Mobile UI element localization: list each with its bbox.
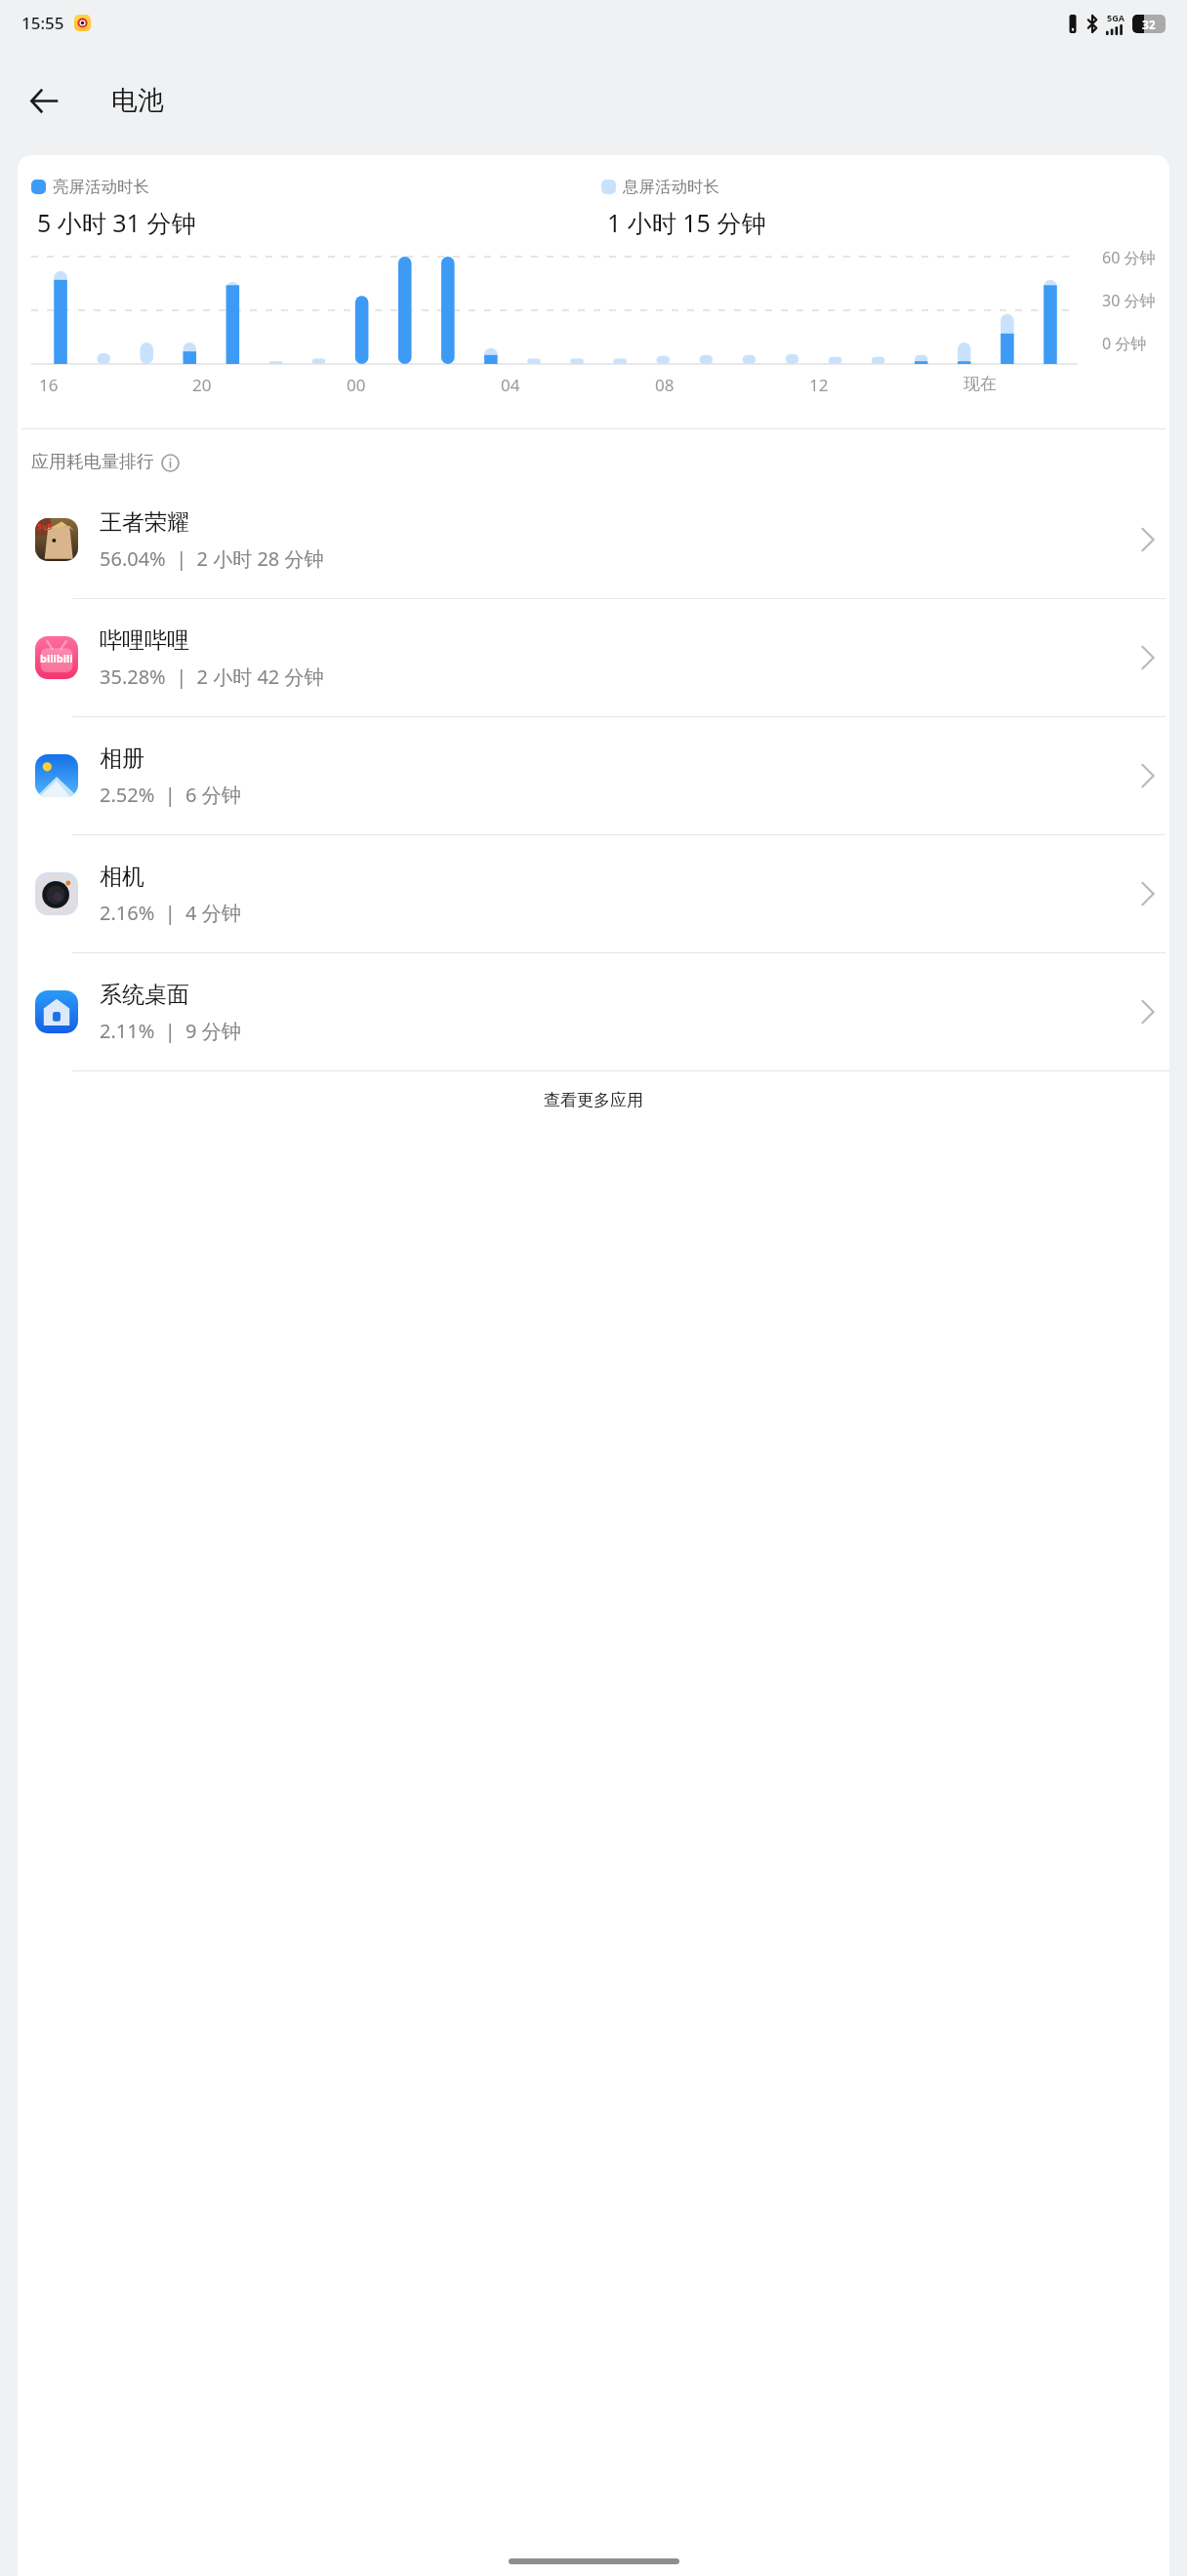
staticText: 现在 (963, 374, 997, 394)
staticText: 系统桌面 (100, 981, 189, 1009)
staticText: 亮屏活动时长 (53, 177, 149, 197)
staticText: bilibili (40, 651, 73, 665)
staticText: 04 (501, 374, 520, 396)
staticText: 08 (655, 374, 675, 396)
staticText: 相机 (100, 863, 144, 891)
staticText: 相册 (100, 745, 144, 773)
staticText: 00 (347, 374, 366, 396)
staticText: 60 分钟 (1102, 247, 1156, 268)
staticText: 5GA (1107, 12, 1125, 23)
staticText: 2.16% | 4 分钟 (100, 900, 241, 926)
staticText: 32 (1142, 17, 1156, 32)
staticText: 息屏活动时长 (623, 177, 719, 197)
staticText: 哔哩哔哩 (100, 626, 189, 655)
staticText: 1 小时 15 分钟 (607, 206, 766, 239)
staticText: 15:55 (21, 12, 64, 34)
button[interactable]: bilibili (18, 599, 1169, 716)
button[interactable]: 系统桌面 (18, 953, 1169, 1070)
staticText: 电池 (111, 84, 164, 117)
staticText: 16 (39, 374, 59, 396)
button[interactable]: 相机 (18, 835, 1169, 952)
staticText: 5v5 (37, 520, 53, 532)
staticText: 2.11% | 9 分钟 (100, 1018, 241, 1044)
staticText: 2.52% | 6 分钟 (100, 782, 241, 808)
staticText: 20 (192, 374, 212, 396)
staticText: 王者荣耀 (100, 508, 189, 537)
staticText: 12 (809, 374, 829, 396)
staticText: 56.04% | 2 小时 28 分钟 (100, 545, 324, 572)
staticText: 应用耗电量排行 (31, 451, 154, 473)
staticText: 查看更多应用 (544, 1090, 643, 1110)
button[interactable]: 查看更多应用 (18, 1071, 1169, 1128)
staticText: 35.28% | 2 小时 42 分钟 (100, 664, 324, 690)
staticText: 5 小时 31 分钟 (37, 206, 196, 239)
staticText: 0 分钟 (1102, 333, 1147, 354)
button[interactable]: 返回 (20, 77, 66, 124)
button[interactable]: 说明 (159, 452, 181, 473)
staticText: 30 分钟 (1102, 290, 1156, 311)
button[interactable]: 5v5 (18, 481, 1169, 598)
button[interactable]: 相册 (18, 717, 1169, 834)
